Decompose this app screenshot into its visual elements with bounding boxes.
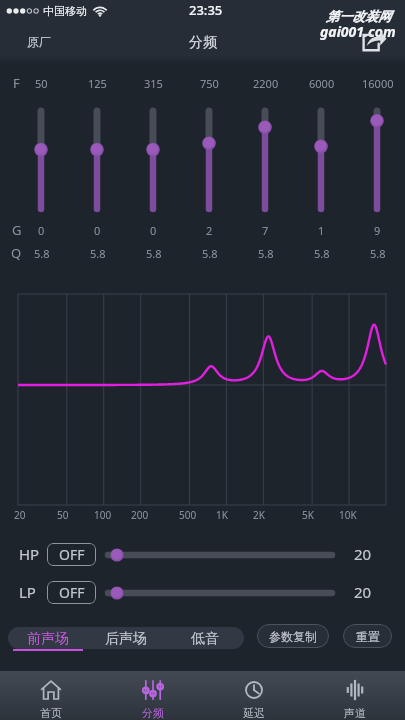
staticText: 5.8: [202, 246, 218, 261]
staticText: 5K: [302, 508, 314, 522]
button[interactable]: 声道: [304, 671, 405, 720]
staticText: 5.8: [258, 246, 274, 261]
staticText: 低音: [191, 630, 219, 648]
button[interactable]: [27, 98, 55, 222]
button[interactable]: [104, 543, 336, 565]
button[interactable]: 低音: [169, 625, 241, 653]
staticText: Q: [11, 244, 22, 262]
staticText: 0: [94, 223, 101, 238]
staticText: 原厂: [27, 34, 51, 49]
button[interactable]: 首页: [0, 671, 102, 720]
staticText: 500: [179, 508, 197, 522]
staticText: 10K: [339, 508, 357, 522]
staticText: 重置: [356, 629, 380, 644]
staticText: 750: [200, 76, 219, 91]
button[interactable]: 参数复制: [257, 624, 329, 648]
staticText: 7: [262, 223, 269, 238]
other: Share: [361, 30, 387, 52]
button[interactable]: OFF: [47, 543, 96, 566]
button[interactable]: 分频: [102, 671, 203, 720]
staticText: OFF: [59, 583, 85, 602]
staticText: LP: [19, 582, 36, 602]
staticText: 2K: [253, 508, 265, 522]
button[interactable]: 后声场: [90, 625, 162, 653]
staticText: OFF: [59, 545, 85, 564]
button[interactable]: 延迟: [203, 671, 304, 720]
button[interactable]: [195, 98, 223, 222]
staticText: 5.8: [34, 246, 50, 261]
button[interactable]: 重置: [343, 624, 392, 648]
staticText: 315: [144, 76, 163, 91]
staticText: 50: [35, 76, 48, 91]
staticText: 125: [88, 76, 107, 91]
staticText: 200: [131, 508, 149, 522]
staticText: 首页: [40, 706, 62, 720]
staticText: 9: [374, 223, 381, 238]
staticText: 23:35: [189, 1, 223, 19]
staticText: 前声场: [27, 630, 69, 648]
staticText: 声道: [344, 706, 366, 720]
staticText: HP: [19, 544, 40, 564]
staticText: 0: [38, 223, 45, 238]
staticText: 6000: [309, 76, 335, 91]
staticText: 5.8: [90, 246, 106, 261]
button[interactable]: [83, 98, 111, 222]
staticText: gai001.com: [320, 22, 396, 41]
staticText: 1K: [216, 508, 228, 522]
staticText: 2200: [253, 76, 279, 91]
staticText: 2: [206, 223, 213, 238]
button[interactable]: [104, 581, 336, 603]
staticText: 20: [354, 582, 372, 602]
button[interactable]: [363, 98, 391, 222]
staticText: 20: [14, 508, 26, 522]
button[interactable]: 原厂: [0, 25, 56, 58]
staticText: 参数复制: [269, 629, 317, 644]
button[interactable]: [251, 98, 279, 222]
staticText: 分频: [189, 34, 217, 52]
staticText: 第一改装网: [326, 8, 391, 24]
staticText: 100: [94, 508, 112, 522]
staticText: F: [13, 74, 20, 92]
staticText: 5.8: [146, 246, 162, 261]
staticText: 5.8: [370, 246, 386, 261]
staticText: 后声场: [105, 630, 147, 648]
staticText: 20: [354, 544, 372, 564]
button[interactable]: [139, 98, 167, 222]
button[interactable]: [307, 98, 335, 222]
staticText: 延迟: [243, 706, 265, 720]
button[interactable]: 前声场: [12, 625, 84, 653]
staticText: 分频: [142, 706, 164, 720]
staticText: 50: [57, 508, 69, 522]
staticText: 1: [318, 223, 325, 238]
staticText: 中国移动: [43, 4, 87, 18]
staticText: 5.8: [314, 246, 330, 261]
staticText: G: [12, 221, 22, 239]
staticText: 0: [150, 223, 157, 238]
button[interactable]: OFF: [47, 581, 96, 604]
staticText: 16000: [362, 76, 394, 91]
